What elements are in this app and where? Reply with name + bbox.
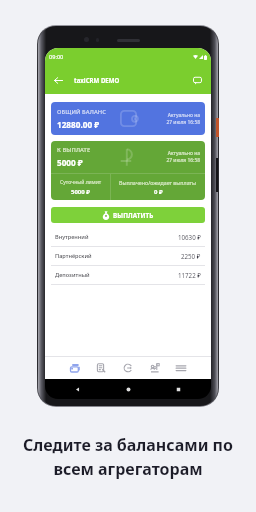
staticText: Следите за балансами по всем агрегаторам xyxy=(0,434,256,480)
button[interactable]: History xyxy=(119,357,137,379)
staticText: taxiCRM DEMO xyxy=(74,76,120,84)
staticText: Внутренний xyxy=(55,233,89,241)
staticText: 10630 ₽ xyxy=(178,233,201,241)
staticText: 09:00 xyxy=(49,53,64,61)
staticText: 12880.00 ₽ xyxy=(57,119,100,130)
staticText: 27 июля 16:58 xyxy=(166,119,200,126)
button[interactable]: Депозитный xyxy=(51,266,205,284)
button[interactable]: Orders xyxy=(92,357,110,379)
button[interactable]: Партнёрский xyxy=(51,247,205,265)
staticText: 5000 ₽ xyxy=(71,188,90,196)
staticText: 5000 ₽ xyxy=(57,157,83,168)
button[interactable]: Menu xyxy=(172,357,190,379)
staticText: ВЫПЛАТИТЬ xyxy=(113,211,154,220)
staticText: К ВЫПЛАТЕ xyxy=(57,146,91,154)
staticText: Выплачено/ожидает выплаты xyxy=(119,179,197,186)
button[interactable]: К ВЫПЛАТЕ xyxy=(51,141,205,200)
staticText: Актуально на xyxy=(167,112,200,119)
button[interactable]: Balance xyxy=(66,357,84,379)
staticText: Партнёрский xyxy=(55,252,92,260)
staticText: 11722 ₽ xyxy=(178,271,201,279)
staticText: Суточный лимит xyxy=(60,179,102,186)
staticText: 2250 ₽ xyxy=(181,252,201,260)
staticText: Депозитный xyxy=(55,271,90,279)
staticText: Актуально на xyxy=(167,150,200,157)
button[interactable]: ВЫПЛАТИТЬ xyxy=(51,207,205,223)
button[interactable]: Drivers xyxy=(146,357,164,379)
staticText: 0 ₽ xyxy=(154,188,163,196)
button[interactable]: Chat xyxy=(191,74,204,87)
button[interactable]: Внутренний xyxy=(51,228,205,246)
button[interactable]: ОБЩИЙ БАЛАНС xyxy=(51,102,205,135)
button[interactable]: Back xyxy=(52,74,65,87)
staticText: 27 июля 16:58 xyxy=(166,157,200,164)
staticText: ОБЩИЙ БАЛАНС xyxy=(57,108,107,116)
